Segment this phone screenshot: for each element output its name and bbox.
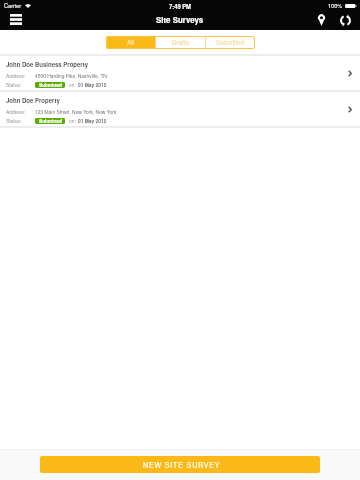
button[interactable]: John Doe Business Property	[0, 56, 360, 90]
staticText: All	[127, 38, 134, 47]
staticText: on:	[69, 81, 76, 88]
staticText: 01 May 2015	[78, 81, 107, 88]
button[interactable]: All	[106, 36, 155, 49]
staticText: Site Surveys	[156, 14, 204, 25]
button[interactable]: Menu	[10, 12, 32, 30]
staticText: John Doe Business Property	[6, 60, 89, 69]
button[interactable]: Location	[312, 11, 330, 29]
staticText: Submitted	[39, 82, 62, 88]
button[interactable]: Submitted	[206, 36, 255, 49]
staticText: 123 Main Street, New York, New York	[35, 108, 117, 115]
button[interactable]: NEW SITE SURVEY	[40, 456, 320, 473]
staticText: 7:49 PM	[169, 2, 191, 10]
staticText: Submitted	[216, 38, 245, 47]
staticText: Address:	[6, 108, 26, 115]
staticText: NEW SITE SURVEY	[143, 460, 221, 470]
staticText: Status:	[6, 81, 22, 88]
staticText: Carrier	[4, 2, 22, 10]
staticText: 4500 Harding Pike, Nashville, TN	[35, 72, 107, 79]
staticText: Drafts	[172, 38, 189, 47]
staticText: John Doe Property	[6, 96, 60, 105]
staticText: Status:	[6, 117, 22, 124]
staticText: Address:	[6, 72, 26, 79]
staticText: on:	[69, 117, 76, 124]
button[interactable]: John Doe Property	[0, 92, 360, 126]
staticText: Submitted	[39, 118, 62, 124]
staticText: 100%	[328, 2, 343, 10]
button[interactable]: Refresh	[336, 11, 354, 29]
staticText: 01 May 2015	[78, 117, 107, 124]
button[interactable]: Drafts	[156, 36, 205, 49]
